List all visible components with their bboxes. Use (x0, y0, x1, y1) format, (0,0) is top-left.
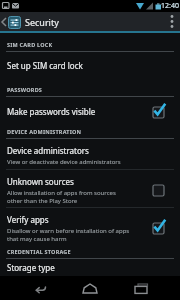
staticText: Verify apps (7, 214, 49, 225)
button[interactable]: Unknown sources (0, 170, 180, 207)
button[interactable]: Security (0, 15, 59, 29)
staticText: Security (25, 16, 59, 28)
staticText: Device administrators (7, 145, 89, 156)
button[interactable] (25, 276, 55, 300)
staticText: Storage type (7, 262, 55, 273)
button[interactable]: Verify apps (0, 208, 180, 245)
staticText: CREDENTIAL STORAGE (7, 248, 71, 255)
button[interactable] (75, 276, 105, 300)
staticText: Disallow or warn before installation of … (7, 227, 130, 235)
button[interactable] (126, 276, 156, 300)
staticText: View or deactivate device administrators (7, 158, 121, 166)
staticText: DEVICE ADMINISTRATION (7, 128, 82, 135)
staticText: Allow installation of apps from sources (7, 189, 116, 197)
button[interactable] (164, 12, 180, 31)
staticText: Set up SIM card lock (7, 60, 83, 71)
staticText: Make passwords visible (7, 106, 96, 117)
staticText: PASSWORDS (7, 86, 43, 93)
staticText: other than the Play Store (7, 197, 78, 205)
staticText: SIM CARD LOCK (7, 41, 53, 48)
button[interactable]: Set up SIM card lock (0, 52, 180, 79)
button[interactable]: Device administrators (0, 139, 180, 169)
staticText: Unknown sources (7, 176, 74, 187)
button[interactable]: Make passwords visible (0, 97, 180, 125)
button[interactable]: Storage type (0, 259, 180, 276)
staticText: 12:40 (161, 1, 179, 11)
staticText: that may cause harm (7, 235, 67, 243)
